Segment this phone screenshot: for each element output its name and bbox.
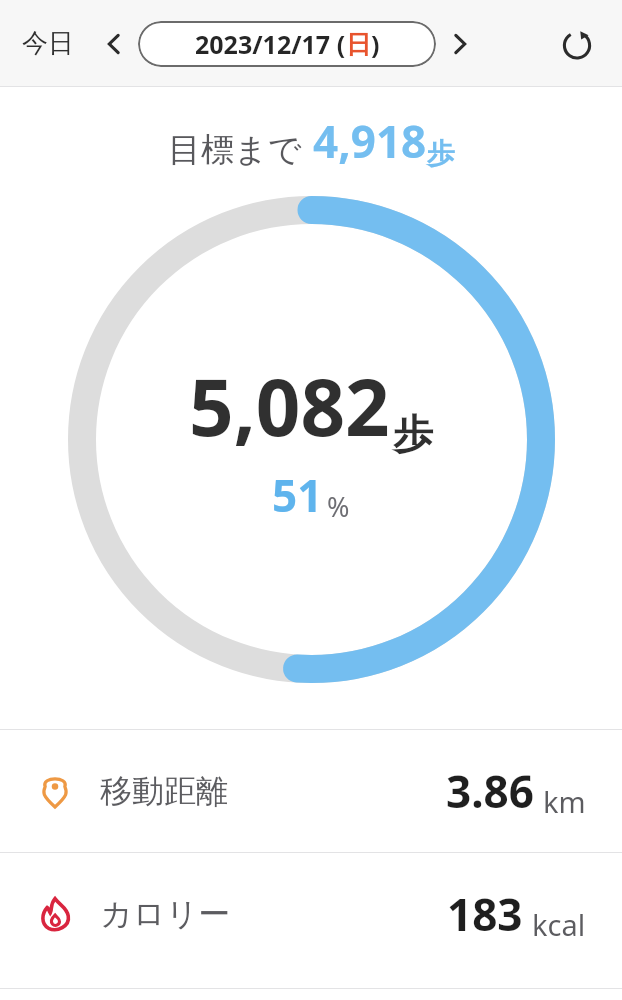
staticText: ) [371,27,380,61]
staticText: % [327,488,350,525]
button[interactable]: 今日 [14,19,82,68]
staticText: 183 [447,884,523,944]
staticText: 3.86 [446,761,534,821]
staticText: 今日 [22,27,74,60]
button[interactable]: 移動距離 [0,730,622,852]
staticText: kcal [532,905,586,944]
staticText: 歩 [427,136,455,171]
staticText: 移動距離 [100,771,228,811]
staticText: 日 [346,29,371,60]
button[interactable]: Next day [438,22,482,66]
staticText: 4,918 [313,111,427,171]
staticText: 目標まで [168,129,302,171]
button[interactable]: Refresh [554,21,600,67]
staticText: km [543,782,586,821]
staticText: カロリー [100,894,231,934]
button[interactable]: カロリー [0,853,622,975]
staticText: 歩 [393,409,433,459]
button[interactable]: 2023/12/17 ( [138,21,436,67]
button[interactable]: Previous day [92,22,136,66]
staticText: 51 [272,465,323,525]
staticText: 5,082 [189,353,390,459]
staticText: 2023/12/17 ( [195,27,346,61]
